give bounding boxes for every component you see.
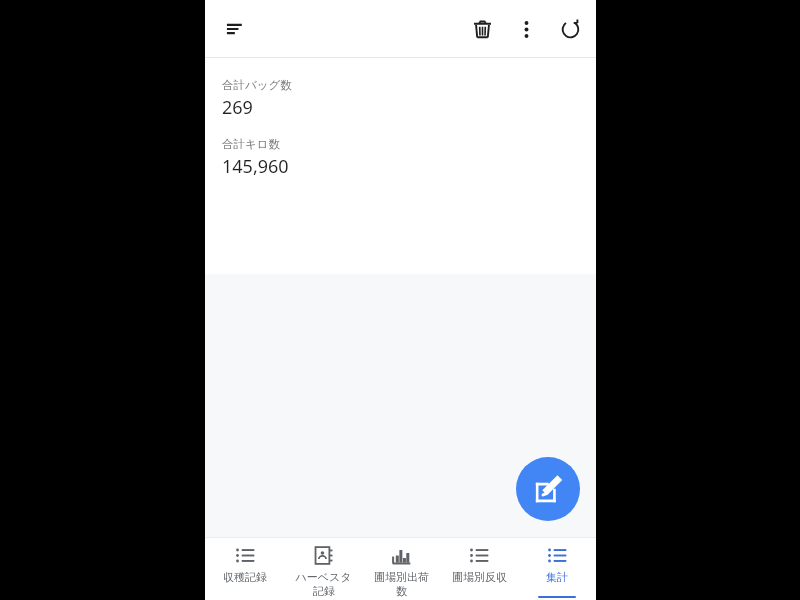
staticText: 269: [222, 95, 253, 120]
button[interactable]: Sort: [213, 5, 261, 53]
button[interactable]: More options: [504, 7, 548, 51]
button[interactable]: ハーベスタ: [284, 538, 362, 600]
staticText: 圃場別出荷: [374, 570, 429, 584]
button[interactable]: 圃場別反収: [440, 538, 518, 600]
staticText: 記録: [313, 584, 335, 598]
button[interactable]: Delete: [460, 7, 504, 51]
staticText: ハーベスタ: [295, 570, 352, 584]
staticText: 圃場別反収: [452, 570, 507, 584]
button[interactable]: Compose: [516, 457, 580, 521]
staticText: 145,960: [222, 154, 289, 179]
button[interactable]: 集計: [518, 538, 596, 600]
button[interactable]: 収穫記録: [205, 538, 284, 600]
button[interactable]: 圃場別出荷: [362, 538, 440, 600]
staticText: 合計バッグ数: [222, 78, 292, 92]
staticText: 合計キロ数: [222, 137, 281, 151]
staticText: 数: [396, 584, 407, 598]
staticText: 集計: [546, 570, 568, 584]
button[interactable]: Refresh: [548, 7, 592, 51]
staticText: 収穫記録: [223, 570, 267, 584]
